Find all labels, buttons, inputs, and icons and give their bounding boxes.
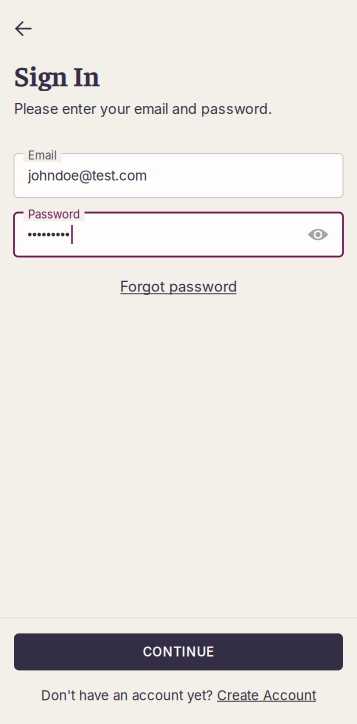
staticText: Password xyxy=(28,207,80,221)
staticText: Create Account xyxy=(217,687,316,703)
staticText: Don't have an account yet? xyxy=(41,687,217,703)
button[interactable]: Create Account xyxy=(217,687,316,703)
staticText: Please enter your email and password. xyxy=(14,100,272,118)
staticText: Forgot password xyxy=(120,277,237,295)
button[interactable]: CONTINUE xyxy=(14,633,343,670)
staticText: Sign In xyxy=(14,57,100,92)
button[interactable]: Forgot password xyxy=(110,272,247,299)
button[interactable]: Show password xyxy=(307,223,329,245)
staticText: johndoe@test.com xyxy=(28,167,147,184)
staticText: CONTINUE xyxy=(143,644,214,659)
button[interactable]: Back xyxy=(15,16,47,42)
staticText: Email xyxy=(28,148,57,162)
